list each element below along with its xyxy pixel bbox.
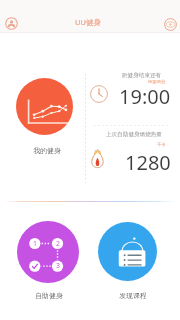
staticText: UU健身 [75, 17, 101, 27]
button[interactable]: 我的健身 [16, 78, 73, 135]
staticText: 自助健身 [35, 291, 63, 300]
staticText: 千卡 [157, 142, 166, 147]
button[interactable]: 自助健身 [17, 221, 79, 283]
staticText: 19:00 [119, 83, 171, 110]
staticText: 距健身结束还有 [122, 72, 162, 79]
button[interactable]: Profile [0, 12, 22, 34]
staticText: 还需45分 [148, 79, 166, 85]
staticText: 发现课程 [119, 291, 147, 300]
staticText: 我的健身 [33, 146, 61, 155]
button[interactable]: 发现课程 [98, 222, 157, 281]
staticText: 1280 [125, 149, 171, 176]
button[interactable]: Scan [159, 13, 180, 35]
staticText: 3 [56, 261, 61, 271]
staticText: 上次自助健身燃烧热量 [106, 131, 162, 138]
staticText: 1 [33, 239, 38, 249]
staticText: 2 [56, 239, 61, 249]
